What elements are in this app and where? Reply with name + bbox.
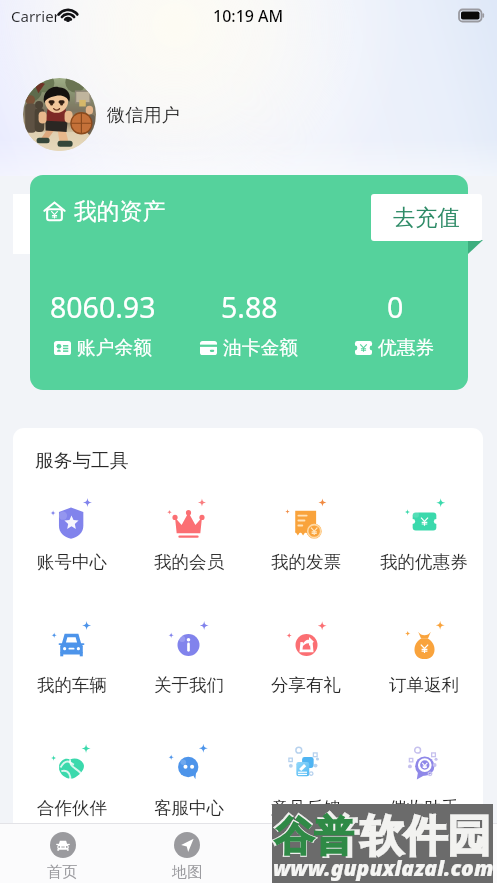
staticText: 油卡金额: [223, 336, 298, 360]
staticText: 地图: [172, 862, 203, 881]
button[interactable]: 我的优惠券: [365, 494, 483, 573]
button[interactable]: 客服中心: [130, 740, 247, 819]
staticText: 谷普: [274, 811, 354, 861]
staticText: 客服中心: [154, 797, 224, 819]
button[interactable]: 我的会员: [130, 494, 247, 573]
button[interactable]: 我的资产: [30, 175, 468, 390]
staticText: 订单返利: [389, 674, 459, 696]
button[interactable]: 我的发票: [247, 494, 365, 573]
staticText: 意见反馈: [271, 797, 341, 819]
staticText: 首页: [47, 862, 78, 881]
button[interactable]: 关于我们: [130, 617, 247, 696]
button[interactable]: 分享有礼: [247, 617, 365, 696]
staticText: 我的资产: [74, 197, 166, 226]
staticText: 账户余额: [77, 336, 152, 360]
staticText: 0: [387, 288, 404, 327]
staticText: Carrier: [11, 6, 60, 26]
staticText: 我的发票: [271, 551, 341, 573]
staticText: www.gupuxlazal.com: [273, 853, 493, 882]
button[interactable]: 地图: [125, 824, 249, 881]
button[interactable]: 去充值: [371, 194, 482, 241]
button[interactable]: 催收助手: [365, 740, 483, 819]
staticText: 分享有礼: [271, 674, 341, 696]
staticText: 去充值: [393, 204, 460, 232]
button[interactable]: 首页: [0, 824, 125, 881]
staticText: 我的车辆: [37, 674, 107, 696]
staticText: 微信用户: [107, 103, 180, 126]
staticText: 优惠券: [378, 336, 435, 360]
button[interactable]: 意见反馈: [247, 740, 365, 819]
button[interactable]: 账号中心: [13, 494, 130, 573]
staticText: 服务与工具: [35, 449, 129, 473]
staticText: 谷普: [272, 809, 359, 864]
button[interactable]: 合作伙伴: [13, 740, 130, 819]
button[interactable]: 我的车辆: [13, 617, 130, 696]
staticText: 10:19 AM: [213, 5, 284, 27]
staticText: 8060.93: [50, 288, 156, 327]
staticText: 我的优惠券: [380, 551, 468, 573]
staticText: 关于我们: [154, 674, 224, 696]
staticText: 软件园: [360, 809, 491, 864]
staticText: 催收助手: [389, 797, 459, 819]
button[interactable]: 订单返利: [365, 617, 483, 696]
staticText: 5.88: [221, 288, 278, 327]
staticText: 我的会员: [154, 551, 224, 573]
staticText: 账号中心: [37, 551, 107, 573]
staticText: 合作伙伴: [37, 797, 107, 819]
